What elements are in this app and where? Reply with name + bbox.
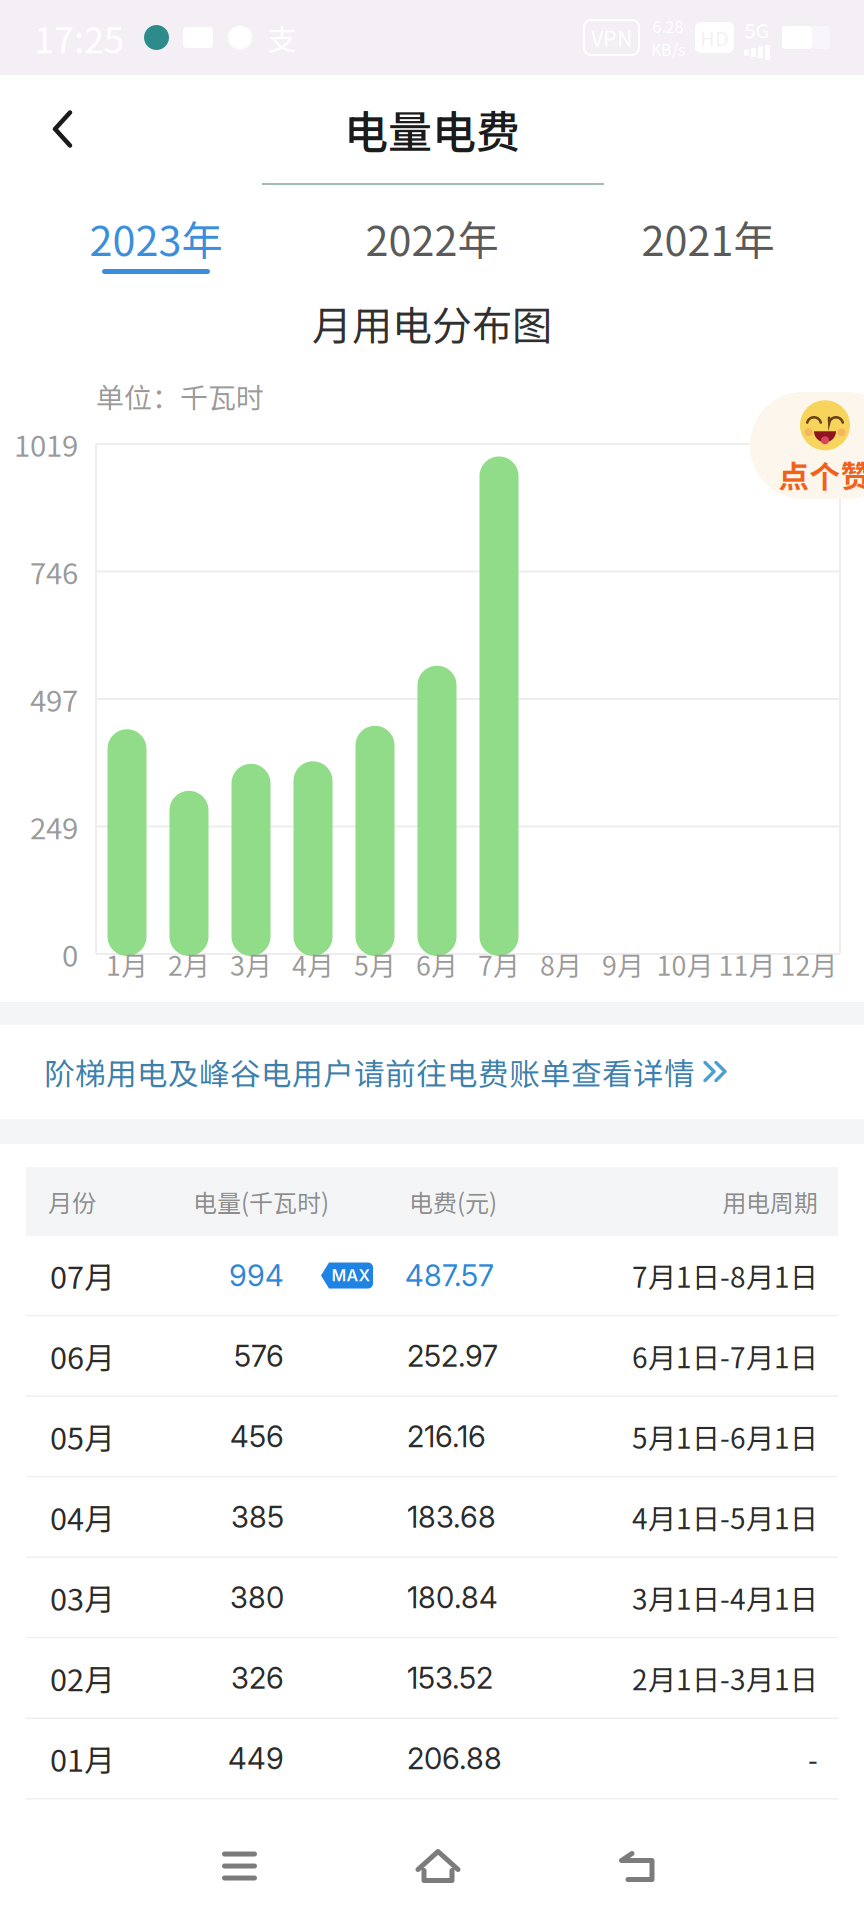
staticText: 2023年: [89, 208, 222, 268]
staticText: 249: [30, 805, 78, 848]
staticText: 06月: [50, 1334, 115, 1378]
staticText: 4月: [292, 945, 334, 983]
staticText: 12月: [780, 945, 837, 983]
staticText: MAX: [331, 1266, 370, 1285]
staticText: 单位：千瓦时: [96, 376, 264, 416]
staticText: VPN: [591, 22, 632, 53]
staticText: 994: [229, 1258, 284, 1293]
staticText: 05月: [50, 1414, 115, 1459]
staticText: 326: [231, 1660, 284, 1696]
staticText: 04月: [50, 1495, 115, 1539]
staticText: 216.16: [407, 1419, 486, 1454]
button[interactable]: 02月: [0, 1638, 864, 1719]
button[interactable]: 05月: [0, 1397, 864, 1477]
button[interactable]: Recent apps: [196, 1813, 283, 1906]
staticText: 07月: [50, 1253, 115, 1298]
staticText: 月份: [48, 1184, 96, 1219]
staticText: 3月: [230, 945, 272, 983]
staticText: 153.52: [407, 1660, 493, 1696]
staticText: 支: [267, 16, 296, 59]
button[interactable]: 03月: [0, 1558, 864, 1638]
button[interactable]: Back: [593, 1813, 681, 1907]
staticText: 8月: [540, 945, 582, 983]
staticText: 11月: [718, 945, 775, 983]
button[interactable]: 点个赞: [750, 392, 864, 499]
staticText: 183.68: [407, 1499, 496, 1535]
button[interactable]: 2021年: [628, 216, 788, 274]
button[interactable]: 2023年: [76, 216, 236, 274]
staticText: 1019: [14, 423, 78, 465]
staticText: 2022年: [365, 208, 498, 268]
button[interactable]: 阶梯用电及峰谷电用户请前往电费账单查看详情: [0, 1025, 864, 1119]
staticText: 电量电费: [344, 97, 520, 161]
staticText: 1月: [106, 945, 148, 983]
staticText: 电量(千瓦时): [193, 1184, 329, 1219]
staticText: 206.88: [407, 1741, 502, 1776]
staticText: 2月1日-3月1日: [632, 1658, 818, 1698]
staticText: 6.28: [652, 14, 683, 37]
staticText: 3月1日-4月1日: [632, 1577, 818, 1618]
staticText: 用电周期: [722, 1184, 818, 1219]
staticText: 497: [30, 678, 78, 720]
staticText: 5G: [744, 15, 769, 44]
button[interactable]: Home: [389, 1813, 486, 1907]
staticText: HD: [700, 23, 729, 52]
button[interactable]: 2022年: [352, 216, 512, 274]
staticText: 385: [231, 1499, 284, 1535]
button[interactable]: 01月: [0, 1719, 864, 1799]
staticText: 电费(元): [409, 1184, 497, 1219]
staticText: 点个赞: [778, 452, 864, 497]
staticText: 380: [230, 1580, 284, 1615]
staticText: 5月: [354, 945, 396, 983]
staticText: KB/s: [651, 37, 685, 61]
staticText: 7月: [478, 945, 520, 983]
staticText: 10月: [656, 945, 713, 983]
staticText: -: [808, 1738, 818, 1779]
staticText: 487.57: [405, 1258, 494, 1293]
staticText: 6月: [416, 945, 458, 983]
staticText: 17:25: [34, 11, 124, 63]
button[interactable]: 06月: [0, 1316, 864, 1397]
staticText: 4月1日-5月1日: [632, 1497, 818, 1537]
staticText: 5月1日-6月1日: [632, 1416, 818, 1457]
staticText: 02月: [50, 1656, 115, 1700]
staticText: 456: [230, 1419, 284, 1454]
staticText: 252.97: [407, 1338, 498, 1374]
staticText: 月用电分布图: [312, 294, 552, 352]
staticText: 阶梯用电及峰谷电用户请前往电费账单查看详情: [44, 1050, 695, 1094]
staticText: 01月: [50, 1736, 115, 1781]
staticText: 2月: [168, 945, 210, 983]
staticText: 746: [30, 550, 78, 593]
staticText: 2021年: [641, 208, 774, 268]
staticText: 449: [228, 1741, 284, 1776]
staticText: 0: [62, 933, 78, 975]
staticText: 9月: [602, 945, 644, 983]
button[interactable]: 04月: [0, 1477, 864, 1558]
button[interactable]: 07月: [0, 1236, 864, 1316]
staticText: 7月1日-8月1日: [632, 1255, 818, 1296]
staticText: 6月1日-7月1日: [632, 1336, 818, 1376]
staticText: 03月: [50, 1575, 115, 1620]
staticText: 180.84: [407, 1580, 498, 1615]
button[interactable]: Back: [0, 80, 104, 177]
staticText: 576: [234, 1338, 284, 1374]
